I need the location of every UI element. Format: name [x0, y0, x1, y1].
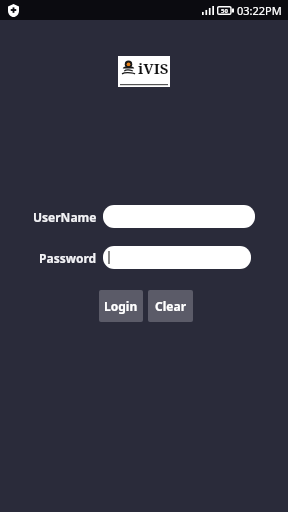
button[interactable]: Clear [148, 290, 193, 322]
button[interactable]: UserName [103, 205, 255, 228]
staticText: Password [39, 250, 97, 266]
other: Security [8, 4, 19, 17]
button[interactable]: Password [103, 246, 251, 269]
staticText: iVIS [138, 58, 169, 78]
staticText: 03:22PM [237, 3, 282, 18]
staticText: UserName [33, 209, 97, 225]
staticText: 50 [221, 7, 228, 15]
staticText: Clear [155, 298, 186, 314]
button[interactable]: Login [99, 290, 143, 322]
staticText: Login [104, 298, 138, 314]
